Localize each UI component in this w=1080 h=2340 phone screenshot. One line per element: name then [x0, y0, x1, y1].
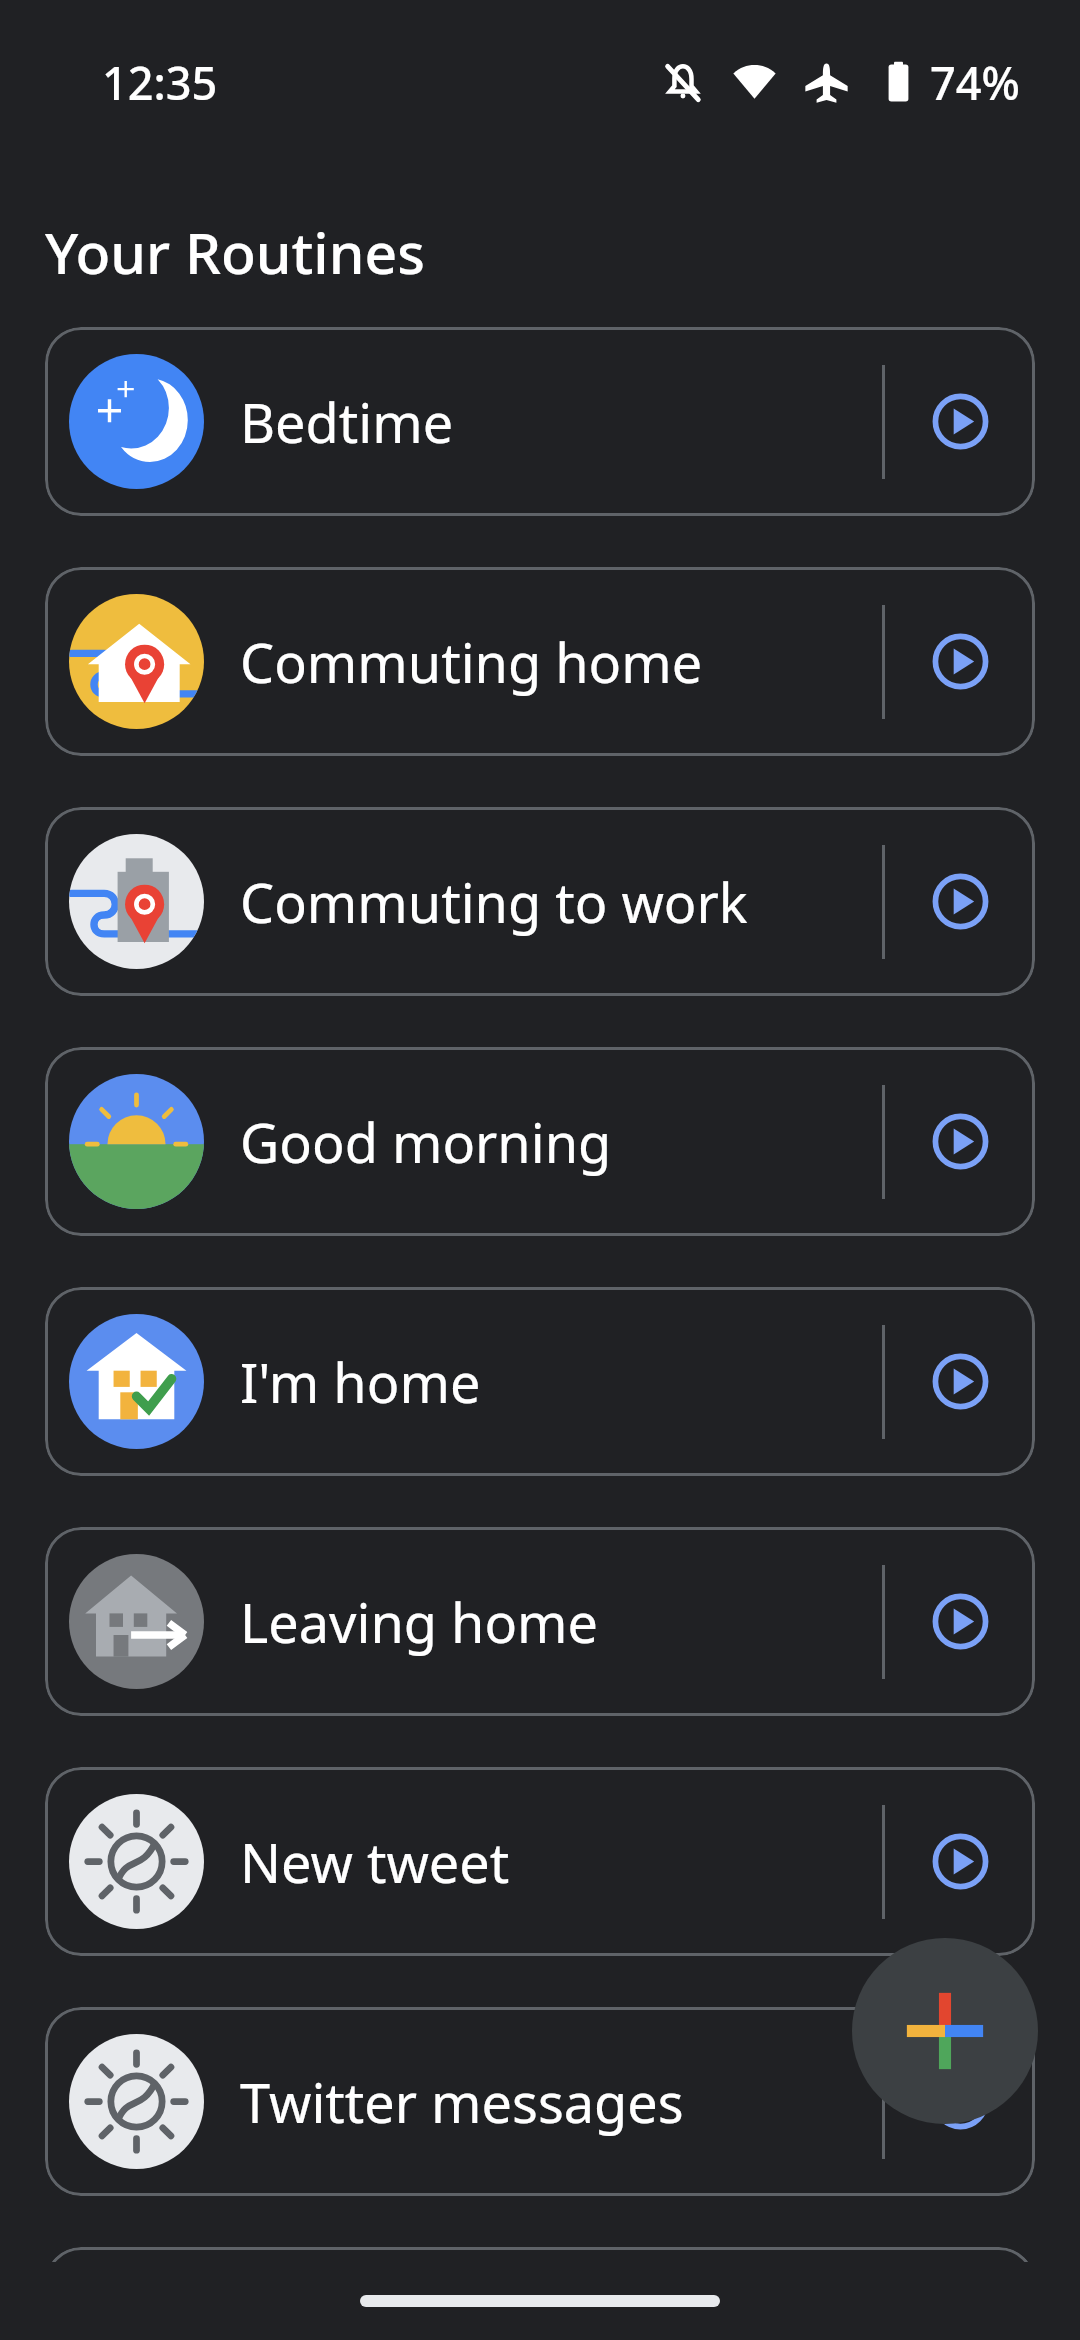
button[interactable]: Play Leaving home [885, 1527, 1035, 1716]
button[interactable]: Play Bedtime [885, 327, 1035, 516]
staticText: I'm home [240, 1345, 882, 1419]
button[interactable]: Play New tweet [885, 1767, 1035, 1956]
staticText: New tweet [240, 1825, 882, 1899]
staticText: 12:35 [102, 52, 218, 113]
staticText: Good morning [240, 1105, 882, 1179]
staticText: Your Routines [45, 213, 425, 291]
button[interactable]: Leaving home [45, 1527, 1035, 1716]
button[interactable]: Play Twitter messages [885, 2007, 1035, 2196]
staticText: Commuting home [240, 625, 882, 699]
button[interactable]: Play I'm home [885, 1287, 1035, 1476]
button[interactable]: Play Commuting home [885, 567, 1035, 756]
staticText: Commuting to work [240, 865, 882, 939]
staticText: Twitter messages [240, 2065, 882, 2139]
button[interactable]: Play Commuting to work [885, 807, 1035, 996]
button[interactable]: Add routine [852, 1938, 1038, 2124]
staticText: Bedtime [240, 385, 882, 459]
button[interactable]: Good morning [45, 1047, 1035, 1236]
button[interactable]: Twitter messages [45, 2007, 1035, 2196]
button[interactable]: New tweet [45, 1767, 1035, 1956]
button[interactable]: Play Workday [885, 2247, 1035, 2262]
button[interactable]: Workday [45, 2247, 1035, 2262]
button[interactable]: I'm home [45, 1287, 1035, 1476]
staticText: Leaving home [240, 1585, 882, 1659]
button[interactable]: Bedtime [45, 327, 1035, 516]
button[interactable]: Play Good morning [885, 1047, 1035, 1236]
button[interactable]: Commuting home [45, 567, 1035, 756]
staticText: 74% [930, 52, 1020, 113]
button[interactable]: Commuting to work [45, 807, 1035, 996]
